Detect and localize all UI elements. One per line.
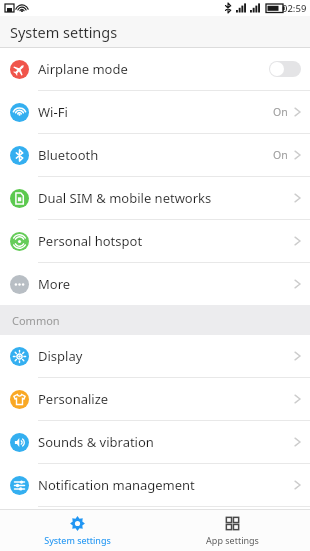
staticText: Sounds & vibration [38,433,294,451]
staticText: Airplane mode [38,60,269,78]
staticText: On [273,105,288,119]
button[interactable]: Personal hotspot [0,220,310,262]
button[interactable]: Wi-Fi [0,91,310,133]
staticText: Personalize [38,390,294,408]
staticText: On [273,148,288,162]
button[interactable]: Bluetooth [0,134,310,176]
staticText: 02:59 [282,2,307,15]
staticText: Display [38,347,294,365]
staticText: App settings [206,534,259,546]
staticText: More [38,275,294,293]
button[interactable]: Notification management [0,464,310,506]
button[interactable]: System settings [0,510,155,551]
staticText: Wi-Fi [38,103,273,121]
staticText: System settings [10,22,118,42]
staticText: Personal hotspot [38,232,294,250]
button[interactable]: Dual SIM & mobile networks [0,177,310,219]
staticText: Common [12,313,60,328]
button[interactable]: Airplane mode [0,48,310,90]
staticText: Notification management [38,476,294,494]
button[interactable]: App settings [155,510,310,551]
button[interactable]: More [0,263,310,305]
staticText: Bluetooth [38,146,273,164]
button[interactable]: Personalize [0,378,310,420]
button[interactable]: Airplane mode toggle [269,61,301,77]
button[interactable]: Sounds & vibration [0,421,310,463]
staticText: System settings [44,534,111,546]
staticText: Dual SIM & mobile networks [38,189,294,207]
button[interactable]: Display [0,335,310,377]
